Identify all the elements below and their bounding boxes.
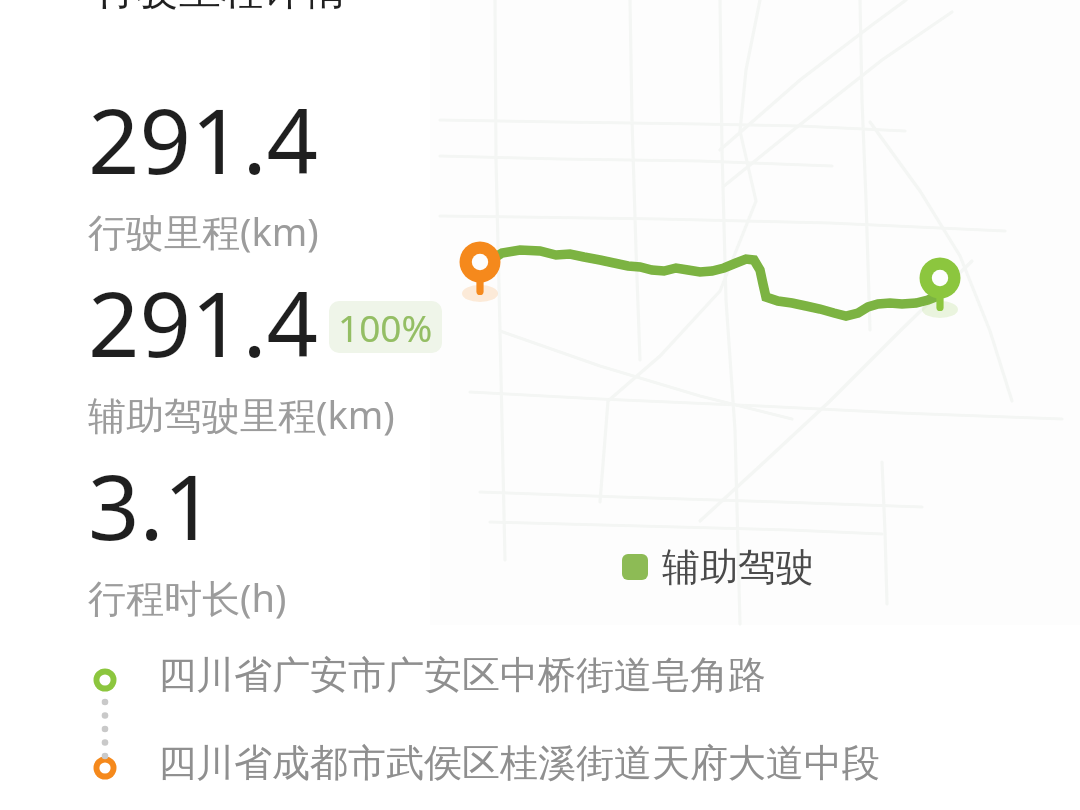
staticText: 100% <box>338 302 433 352</box>
staticText: 291.4 <box>88 261 319 384</box>
button[interactable]: 100% <box>329 301 442 353</box>
staticText: 四川省成都市武侯区桂溪街道天府大道中段 <box>158 739 880 787</box>
button[interactable]: 行驶里程详情 <box>95 0 347 17</box>
staticText: 行程时长(h) <box>88 571 287 623</box>
staticText: 四川省广安市广安区中桥街道皂角路 <box>158 651 766 699</box>
staticText: 3.1 <box>88 444 216 567</box>
staticText: 291.4 <box>88 78 319 201</box>
staticText: 辅助驾驶 <box>662 543 814 591</box>
staticText: 行驶里程详情 <box>95 0 347 17</box>
staticText: 辅助驾驶里程(km) <box>88 388 395 440</box>
button[interactable]: 四川省成都市武侯区桂溪街道天府大道中段 <box>158 739 896 787</box>
button[interactable]: 四川省广安市广安区中桥街道皂角路 <box>158 651 782 699</box>
button[interactable]: 辅助驾驶 <box>622 543 814 591</box>
staticText: 行驶里程(km) <box>88 205 319 257</box>
